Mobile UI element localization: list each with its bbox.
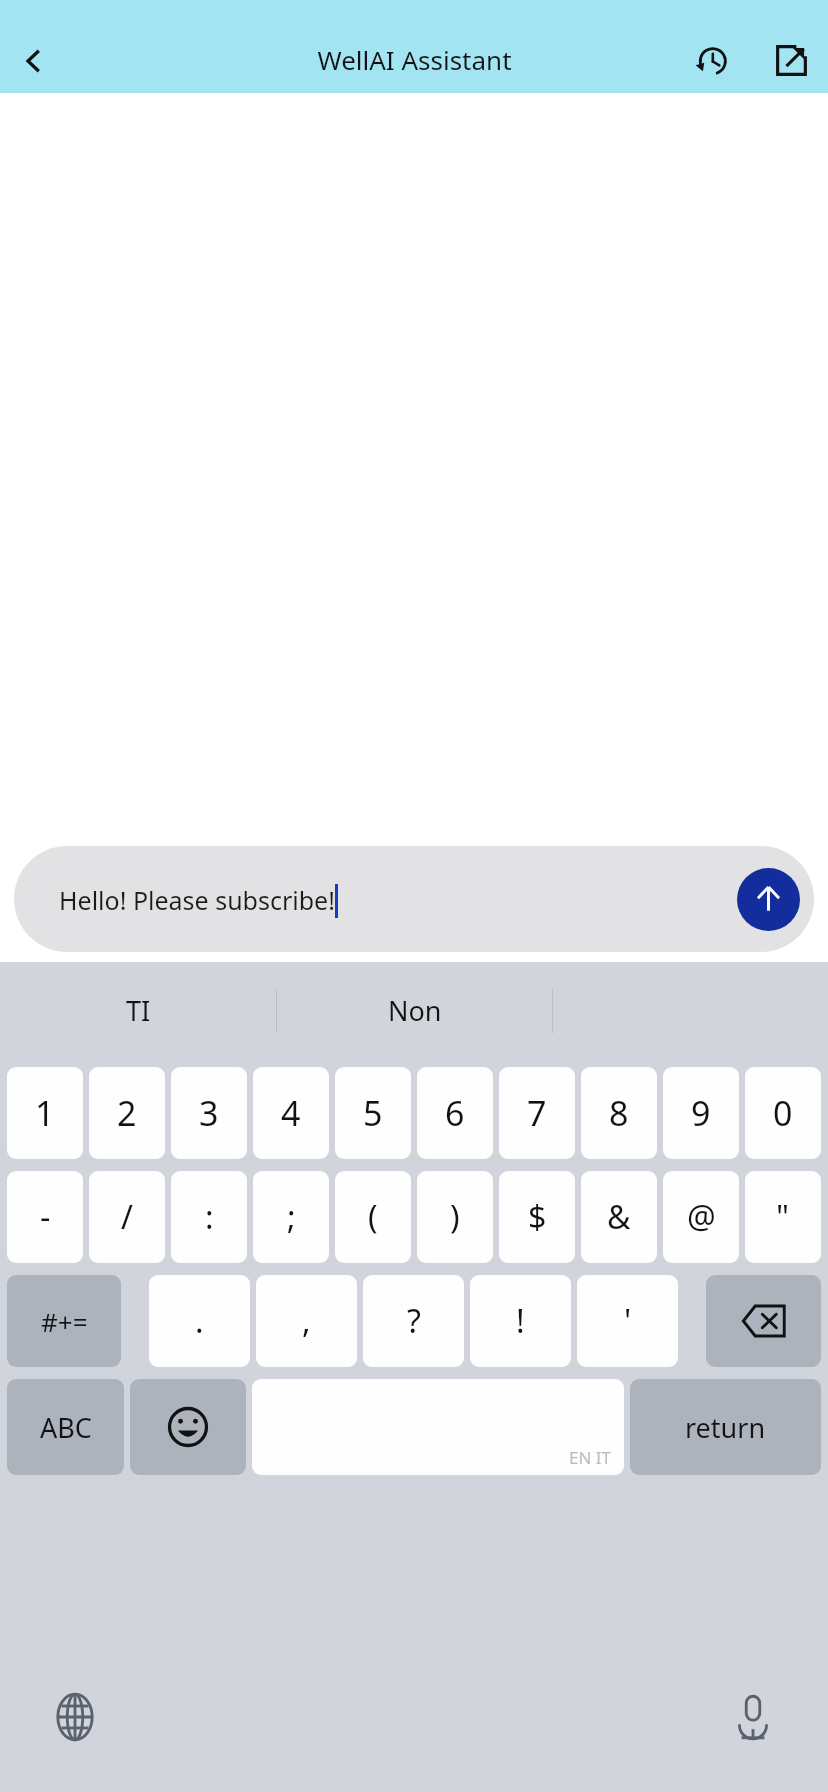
button[interactable]: Voice input — [714, 1678, 792, 1756]
staticText: & — [607, 1195, 631, 1239]
staticText: ABC — [40, 1409, 92, 1446]
button[interactable]: 4 — [253, 1067, 329, 1159]
button[interactable]: , — [256, 1275, 357, 1367]
staticText: #+= — [41, 1304, 88, 1339]
button[interactable]: 0 — [745, 1067, 821, 1159]
staticText: ! — [516, 1299, 525, 1343]
button[interactable]: Emoji — [130, 1379, 246, 1475]
button[interactable]: & — [581, 1171, 657, 1263]
staticText: 4 — [281, 1090, 301, 1136]
button[interactable]: ; — [253, 1171, 329, 1263]
staticText: EN IT — [569, 1446, 612, 1469]
button[interactable]: Non — [277, 962, 552, 1059]
button[interactable]: return — [630, 1379, 821, 1475]
button[interactable]: Send — [737, 868, 800, 931]
staticText: - — [40, 1195, 51, 1239]
button[interactable]: Change language — [36, 1678, 114, 1756]
button[interactable]: ( — [335, 1171, 411, 1263]
staticText: : — [205, 1195, 214, 1239]
staticText: ( — [368, 1195, 378, 1239]
staticText: WellAI Assistant — [317, 42, 512, 77]
staticText: ? — [407, 1299, 421, 1343]
button[interactable]: History — [684, 33, 738, 87]
button[interactable]: Space — [252, 1379, 624, 1475]
button[interactable]: Open in new — [764, 33, 818, 87]
staticText: , — [302, 1299, 311, 1343]
staticText: Non — [388, 992, 442, 1029]
button[interactable]: : — [171, 1171, 247, 1263]
button[interactable]: 3 — [171, 1067, 247, 1159]
button[interactable]: 9 — [663, 1067, 739, 1159]
button[interactable]: ' — [577, 1275, 678, 1367]
staticText: 0 — [773, 1090, 793, 1136]
staticText: ) — [450, 1195, 460, 1239]
staticText: return — [685, 1409, 766, 1446]
staticText: 9 — [691, 1090, 711, 1136]
staticText: $ — [528, 1195, 547, 1239]
staticText: @ — [687, 1195, 716, 1239]
button[interactable]: " — [745, 1171, 821, 1263]
button[interactable]: ABC — [7, 1379, 124, 1475]
staticText: 6 — [445, 1090, 465, 1136]
button[interactable]: . — [149, 1275, 250, 1367]
staticText: . — [195, 1299, 204, 1343]
button[interactable]: 7 — [499, 1067, 575, 1159]
button[interactable]: 2 — [89, 1067, 165, 1159]
staticText: 7 — [527, 1090, 547, 1136]
staticText: 3 — [199, 1090, 219, 1136]
staticText: ' — [624, 1299, 632, 1343]
staticText: 5 — [363, 1090, 383, 1136]
button[interactable]: 5 — [335, 1067, 411, 1159]
button[interactable]: 8 — [581, 1067, 657, 1159]
button[interactable]: Backspace — [706, 1275, 821, 1367]
button[interactable]: ) — [417, 1171, 493, 1263]
staticText: 1 — [35, 1090, 55, 1136]
staticText: Hello! Please subscribe! — [59, 883, 335, 917]
staticText: TI — [126, 992, 151, 1029]
button[interactable]: 6 — [417, 1067, 493, 1159]
staticText: 2 — [117, 1090, 137, 1136]
staticText: / — [121, 1195, 133, 1239]
button[interactable]: ! — [470, 1275, 571, 1367]
button[interactable]: 1 — [7, 1067, 83, 1159]
button[interactable]: Hello! Please subscribe! — [14, 846, 814, 952]
button[interactable]: #+= — [7, 1275, 121, 1367]
button[interactable]: $ — [499, 1171, 575, 1263]
button[interactable]: - — [7, 1171, 83, 1263]
staticText: ; — [287, 1195, 296, 1239]
button[interactable]: / — [89, 1171, 165, 1263]
button[interactable]: ? — [363, 1275, 464, 1367]
button[interactable]: TI — [0, 962, 276, 1059]
button[interactable]: @ — [663, 1171, 739, 1263]
staticText: " — [776, 1195, 790, 1239]
button[interactable]: Back — [8, 35, 60, 87]
staticText: 8 — [609, 1090, 629, 1136]
